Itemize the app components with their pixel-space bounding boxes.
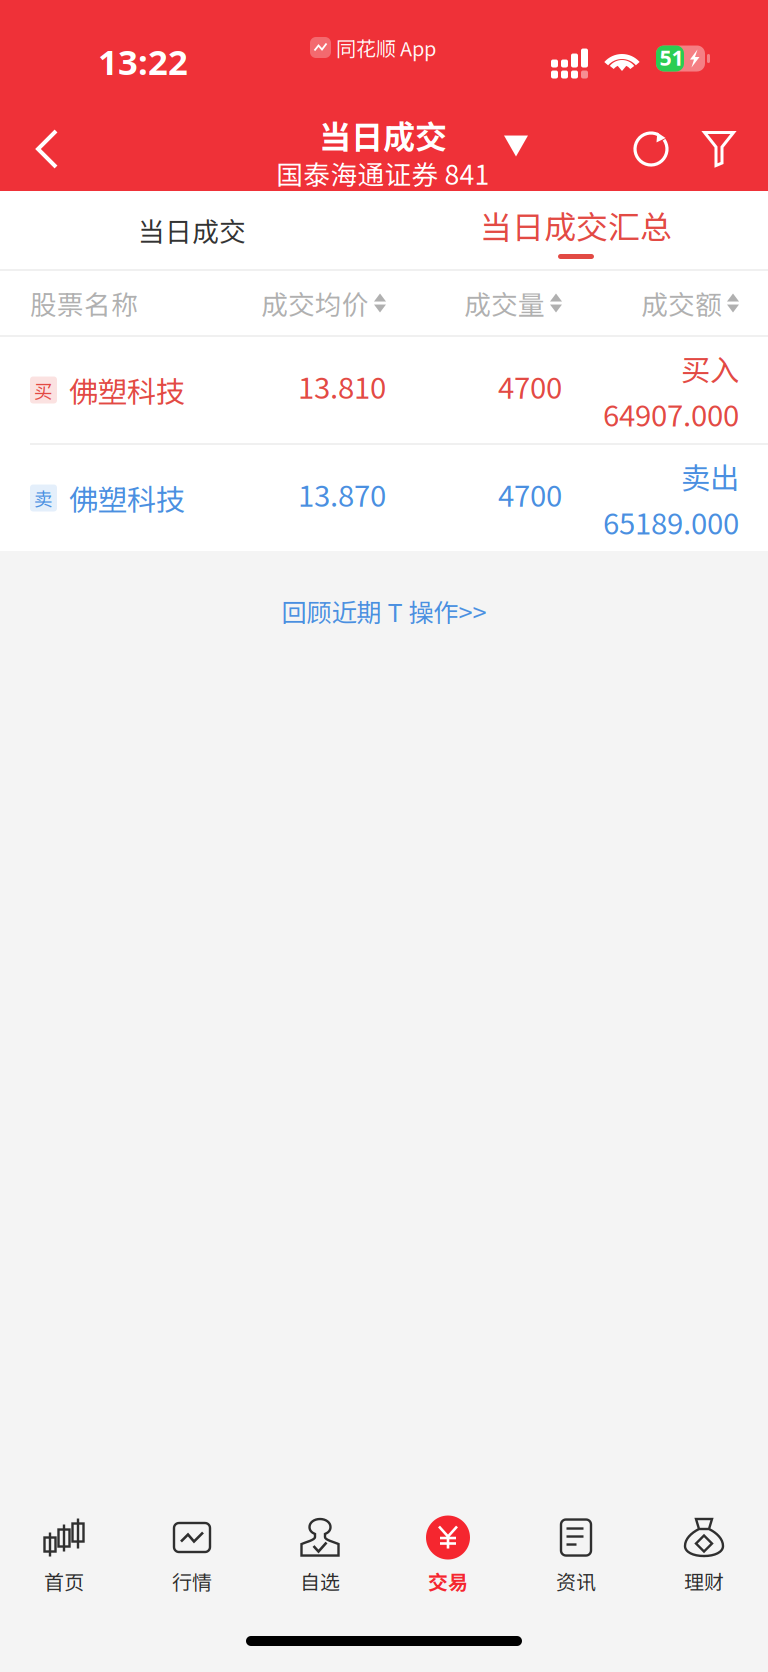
staticText: 65189.000 [603,500,739,543]
staticText: 股票名称 [30,284,138,322]
staticText: 资讯 [556,1566,596,1595]
staticText: 51 [659,43,683,72]
staticText: 成交量 [464,284,545,322]
staticText: 4700 [498,365,562,407]
staticText: 当日成交 [138,211,246,249]
staticText: 64907.000 [603,392,739,435]
button[interactable]: 返回 [0,107,104,191]
button[interactable]: 回顾近期 T 操作>> [0,551,768,671]
staticText: 首页 [44,1566,84,1595]
button[interactable]: 首页 [0,1505,128,1605]
button[interactable]: 自选 [256,1505,384,1605]
staticText: 佛塑科技 [69,477,185,519]
staticText: 行情 [172,1566,212,1595]
staticText: 回顾近期 T 操作>> [281,593,486,629]
button[interactable]: 买 [0,337,768,443]
button[interactable]: 行情 [128,1505,256,1605]
staticText: 买 [34,376,53,403]
button[interactable]: 交易 [384,1505,512,1605]
staticText: 国泰海通证券 841 [276,154,489,192]
button[interactable]: 刷新 [622,111,680,187]
button[interactable]: 资讯 [512,1505,640,1605]
staticText: 成交均价 [261,284,369,322]
staticText: 13:22 [98,38,188,84]
staticText: 当日成交汇总 [480,202,672,248]
staticText: 同花顺 App [336,33,436,62]
staticText: 13.810 [298,365,386,407]
staticText: 买入 [681,347,739,389]
staticText: 卖出 [681,455,739,497]
staticText: 自选 [300,1566,340,1595]
button[interactable]: 筛选 [690,111,748,187]
staticText: 13.870 [298,473,386,515]
button[interactable]: 当日成交汇总 [384,191,768,269]
button[interactable]: 理财 [640,1505,768,1605]
staticText: 理财 [684,1566,724,1595]
staticText: 交易 [428,1566,468,1595]
staticText: 佛塑科技 [69,369,185,411]
staticText: 4700 [498,473,562,515]
staticText: 卖 [34,484,53,511]
button[interactable]: 当日成交 [0,191,384,269]
button[interactable]: 当日成交 [270,105,558,189]
staticText: 成交额 [641,284,722,322]
staticText: 当日成交 [319,111,447,158]
button[interactable]: 卖 [0,445,768,551]
